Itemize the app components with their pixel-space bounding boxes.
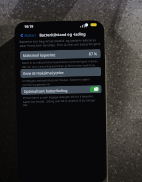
staticText: Batterier har begrenset levetid, og ytel… [19,38,101,48]
button[interactable]: Optimalisert batterilading [21,85,102,95]
staticText: Maksimal kapasitet [23,52,56,58]
staticText: 16:19 [24,24,34,29]
button[interactable]: Maksimal kapasitet [20,49,101,60]
button[interactable]: Back [18,33,37,38]
staticText: Innebygde ytelsesfunksjoner brukes. Batt… [22,77,99,86]
button[interactable]: Evne til maksimal ytelse [20,67,101,78]
staticText: Batteritilstand og -lading [39,31,86,37]
staticText: 87 % [89,51,98,56]
staticText: iPhone lærer av den daglige ladingen din… [23,94,100,106]
staticText: Batteri [24,33,36,38]
staticText: Optimalisert batterilading [24,88,68,94]
staticText: Dette er et mål på batterikapasiteten sa… [22,59,99,68]
staticText: Evne til maksimal ytelse [23,70,64,76]
